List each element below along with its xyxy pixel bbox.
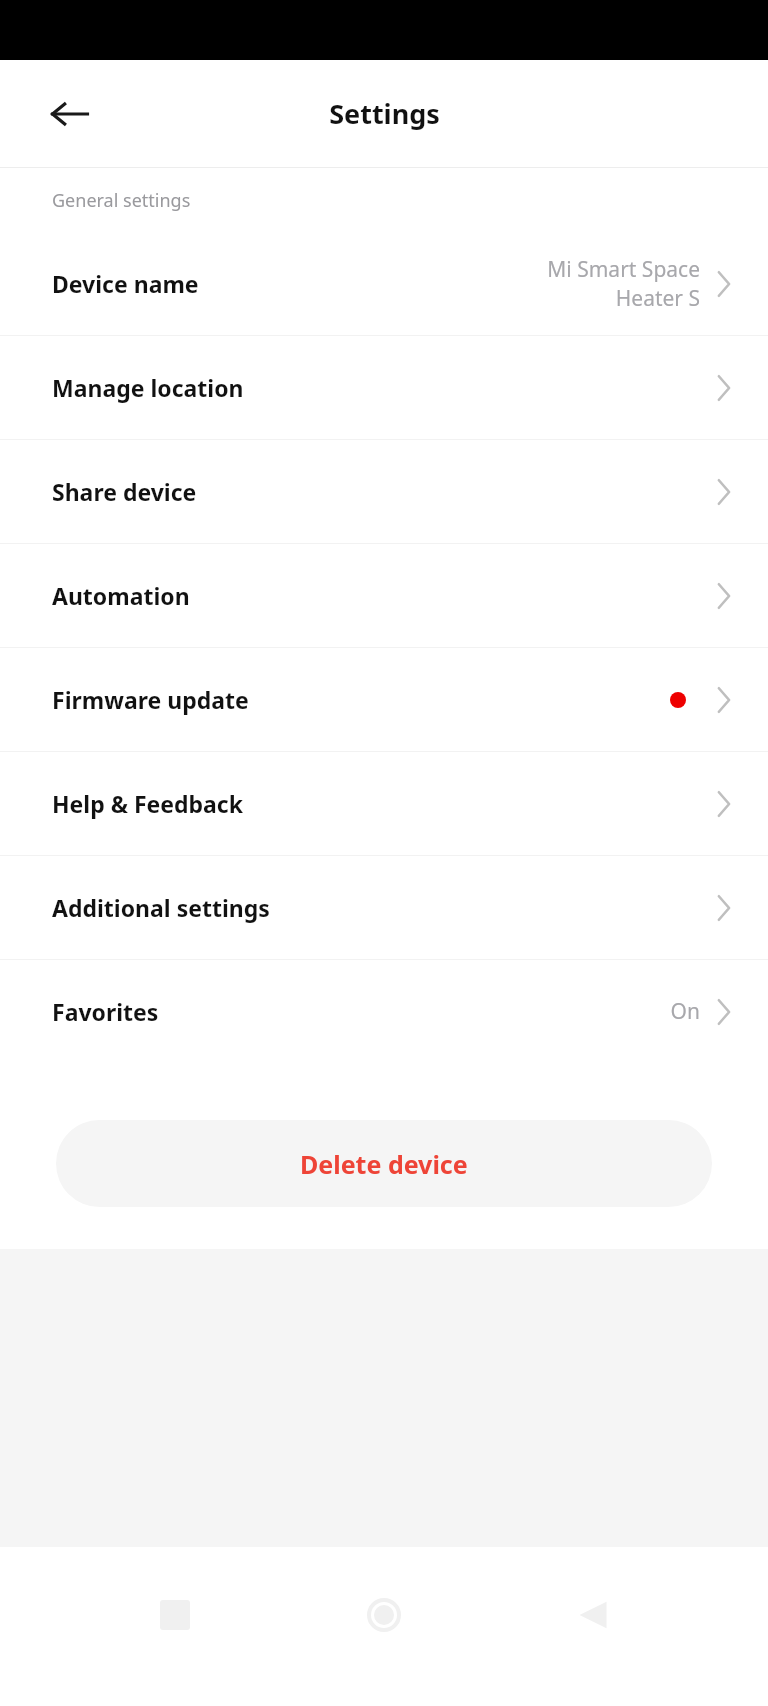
button[interactable]: Manage location <box>0 336 768 439</box>
staticText: Delete device <box>300 1147 468 1181</box>
staticText: Help & Feedback <box>52 788 243 819</box>
staticText: Automation <box>52 580 190 611</box>
staticText: Favorites <box>52 996 159 1027</box>
staticText: Device name <box>52 268 199 299</box>
button[interactable]: Delete device <box>56 1120 712 1207</box>
button[interactable]: Additional settings <box>0 856 768 959</box>
staticText: Additional settings <box>52 892 270 923</box>
button[interactable]: Firmware update <box>0 648 768 751</box>
staticText: Manage location <box>52 372 244 403</box>
button[interactable]: Back <box>36 80 104 148</box>
button[interactable]: Device name <box>0 232 768 335</box>
staticText: Settings <box>329 95 440 132</box>
staticText: Heater S <box>615 284 700 313</box>
staticText: General settings <box>52 188 191 213</box>
staticText: Mi Smart Space <box>547 255 700 284</box>
button[interactable]: Recent apps <box>141 1581 209 1649</box>
button[interactable]: Share device <box>0 440 768 543</box>
staticText: Firmware update <box>52 684 249 715</box>
staticText: On <box>670 997 700 1026</box>
button[interactable]: Home <box>350 1581 418 1649</box>
button[interactable]: Favorites <box>0 960 768 1063</box>
staticText: Share device <box>52 476 197 507</box>
button[interactable]: Back <box>559 1581 627 1649</box>
button[interactable]: Automation <box>0 544 768 647</box>
button[interactable]: Help & Feedback <box>0 752 768 855</box>
